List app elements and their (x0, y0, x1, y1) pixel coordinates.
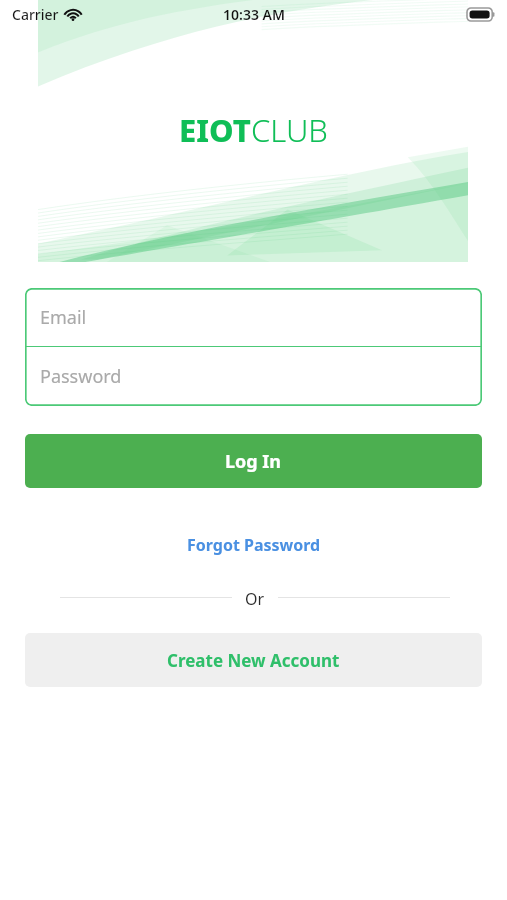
other: Wi-Fi signal (65, 8, 81, 21)
staticText: Or (245, 588, 265, 606)
staticText: Forgot Password (187, 534, 321, 556)
other: Battery full (467, 8, 495, 21)
staticText: Carrier (12, 5, 59, 24)
staticText: Create New Account (167, 649, 340, 672)
staticText: EIOT (179, 109, 251, 151)
button[interactable]: Email (25, 288, 482, 346)
staticText: 10:33 AM (223, 5, 285, 24)
button[interactable]: Password (25, 347, 482, 405)
staticText: Password (40, 364, 122, 389)
button[interactable]: Create New Account (25, 633, 482, 687)
staticText: Log In (225, 449, 282, 474)
staticText: Email (40, 305, 87, 330)
button[interactable]: Forgot Password (120, 530, 387, 560)
staticText: CLUB (251, 109, 328, 151)
button[interactable]: Log In (25, 434, 482, 488)
